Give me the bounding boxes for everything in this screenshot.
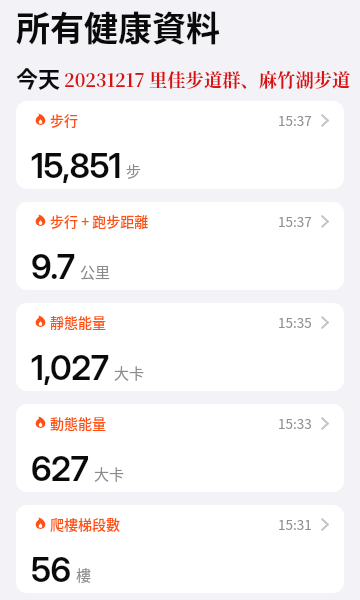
staticText: 大卡 xyxy=(94,463,125,485)
staticText: 56 xyxy=(31,549,71,590)
button[interactable]: 步行 xyxy=(16,101,344,189)
button[interactable]: 步行 + 跑步距離 xyxy=(16,202,344,290)
staticText: 15:33 xyxy=(278,413,312,433)
staticText: 大卡 xyxy=(114,362,145,384)
staticText: 15:37 xyxy=(278,110,312,130)
button[interactable]: 靜態能量 xyxy=(16,303,344,391)
staticText: 9.7 xyxy=(31,246,75,287)
staticText: 今天 xyxy=(16,61,61,93)
staticText: 步行 + 跑步距離 xyxy=(50,211,149,231)
staticText: 樓 xyxy=(76,564,92,586)
staticText: 20231217 xyxy=(64,66,145,92)
button[interactable]: 動態能量 xyxy=(16,404,344,492)
staticText: 627 xyxy=(31,448,89,489)
staticText: 動態能量 xyxy=(50,413,106,433)
staticText: 15:37 xyxy=(278,211,312,231)
staticText: 步 xyxy=(126,160,142,182)
staticText: 爬樓梯段數 xyxy=(50,514,120,534)
staticText: 15:31 xyxy=(278,514,312,534)
staticText: 公里 xyxy=(80,261,111,283)
button[interactable]: 爬樓梯段數 xyxy=(16,505,344,593)
staticText: 里佳步道群、麻竹湖步道 xyxy=(149,66,351,92)
staticText: 15,851 xyxy=(31,145,121,186)
staticText: 步行 xyxy=(50,110,78,130)
staticText: 靜態能量 xyxy=(50,312,106,332)
staticText: 所有健康資料 xyxy=(16,2,220,51)
staticText: 1,027 xyxy=(31,347,109,388)
staticText: 15:35 xyxy=(278,312,312,332)
